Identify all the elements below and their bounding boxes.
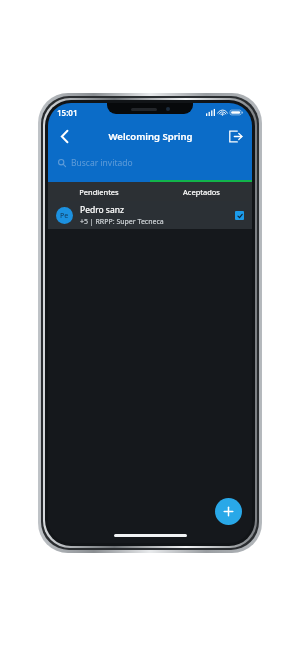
button[interactable]: Add guest xyxy=(215,498,242,525)
button[interactable]: Accepted xyxy=(235,211,244,220)
staticText: Pe xyxy=(60,211,69,221)
button[interactable]: Back xyxy=(51,123,77,149)
staticText: Buscar invitado xyxy=(71,157,133,169)
staticText: Pendientes xyxy=(79,187,119,197)
button[interactable]: Pe xyxy=(48,201,252,229)
staticText: +5 | RRPP: Super Tecneca xyxy=(80,217,164,227)
staticText: 15:01 xyxy=(57,107,78,118)
staticText: Aceptados xyxy=(183,187,220,197)
button[interactable]: Pendientes xyxy=(48,182,150,201)
staticText: Pedro sanz xyxy=(80,204,124,216)
button[interactable]: Buscar invitado xyxy=(48,151,252,175)
button[interactable]: Log out xyxy=(222,123,248,149)
button[interactable]: Aceptados xyxy=(150,182,252,201)
staticText: Welcoming Spring xyxy=(108,130,193,143)
